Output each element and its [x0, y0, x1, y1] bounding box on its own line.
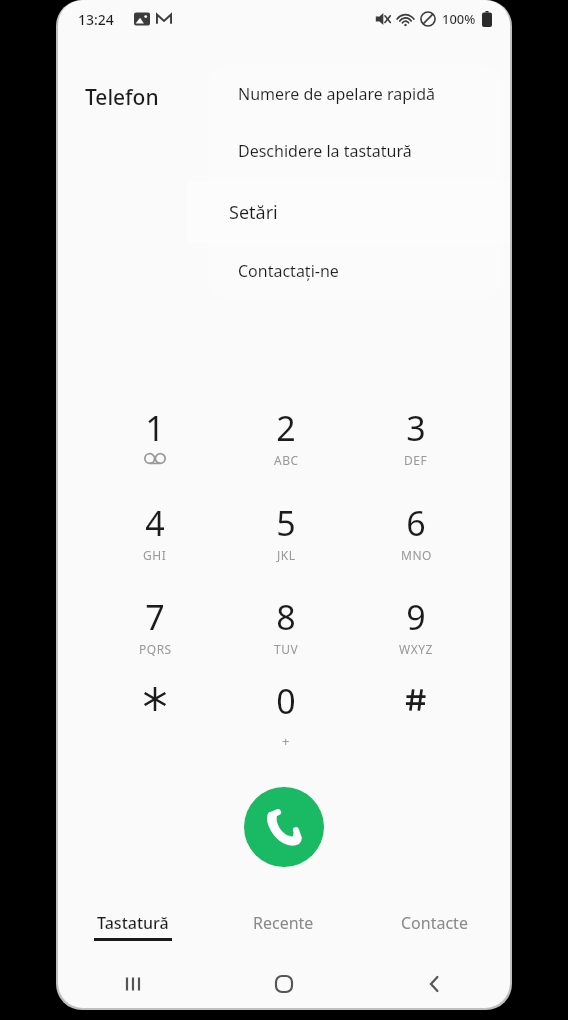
button[interactable]: 7 [107, 594, 203, 682]
staticText: 6 [406, 500, 426, 546]
button[interactable]: Contactați-ne [208, 242, 502, 300]
staticText: + [282, 732, 290, 750]
staticText: 100% [442, 10, 476, 28]
staticText: WXYZ [399, 641, 433, 657]
staticText: TUV [274, 641, 299, 657]
button[interactable]: Contacte [359, 900, 510, 958]
staticText: Recente [253, 912, 314, 934]
staticText: 1 [145, 405, 165, 451]
staticText: Contacte [401, 912, 468, 934]
staticText: Deschidere la tastatură [238, 140, 412, 162]
staticText: 9 [406, 594, 426, 640]
button[interactable]: Recent apps [58, 960, 208, 1008]
staticText: Telefon [85, 83, 159, 112]
button[interactable]: Home [208, 960, 359, 1008]
button[interactable]: 8 [238, 594, 334, 682]
staticText: Contactați-ne [238, 260, 339, 282]
staticText: 4 [145, 500, 165, 546]
button[interactable]: Telefon [85, 78, 159, 116]
button[interactable]: Call [244, 787, 324, 867]
staticText: Tastatură [97, 912, 169, 934]
button[interactable]: Back [359, 960, 510, 1008]
button[interactable]: 2 [238, 405, 334, 493]
staticText: 5 [276, 500, 296, 546]
button[interactable]: Setări [187, 181, 510, 243]
staticText: 8 [276, 594, 296, 640]
staticText: GHI [143, 547, 167, 563]
button[interactable]: 1 [107, 405, 203, 493]
staticText: Setări [229, 200, 278, 225]
button[interactable]: 5 [238, 500, 334, 588]
button[interactable] [107, 678, 203, 766]
button[interactable]: Numere de apelare rapidă [208, 65, 502, 122]
staticText: JKL [277, 547, 296, 563]
staticText: MNO [401, 547, 432, 563]
button[interactable]: 9 [368, 594, 464, 682]
staticText: 13:24 [78, 10, 114, 29]
button[interactable]: 4 [107, 500, 203, 588]
button[interactable]: 6 [368, 500, 464, 588]
button[interactable]: Recente [208, 900, 359, 958]
staticText: DEF [404, 452, 428, 468]
button[interactable]: 0 [238, 678, 334, 766]
button[interactable]: 3 [368, 405, 464, 493]
button[interactable]: Deschidere la tastatură [208, 122, 502, 180]
button[interactable] [368, 678, 464, 766]
staticText: 7 [145, 594, 165, 640]
staticText: 3 [406, 405, 426, 451]
button[interactable]: Tastatură [58, 900, 208, 958]
staticText: 0 [276, 678, 296, 724]
staticText: Numere de apelare rapidă [238, 83, 435, 105]
staticText: ABC [274, 452, 299, 468]
staticText: 2 [276, 405, 296, 451]
staticText: PQRS [139, 641, 172, 657]
